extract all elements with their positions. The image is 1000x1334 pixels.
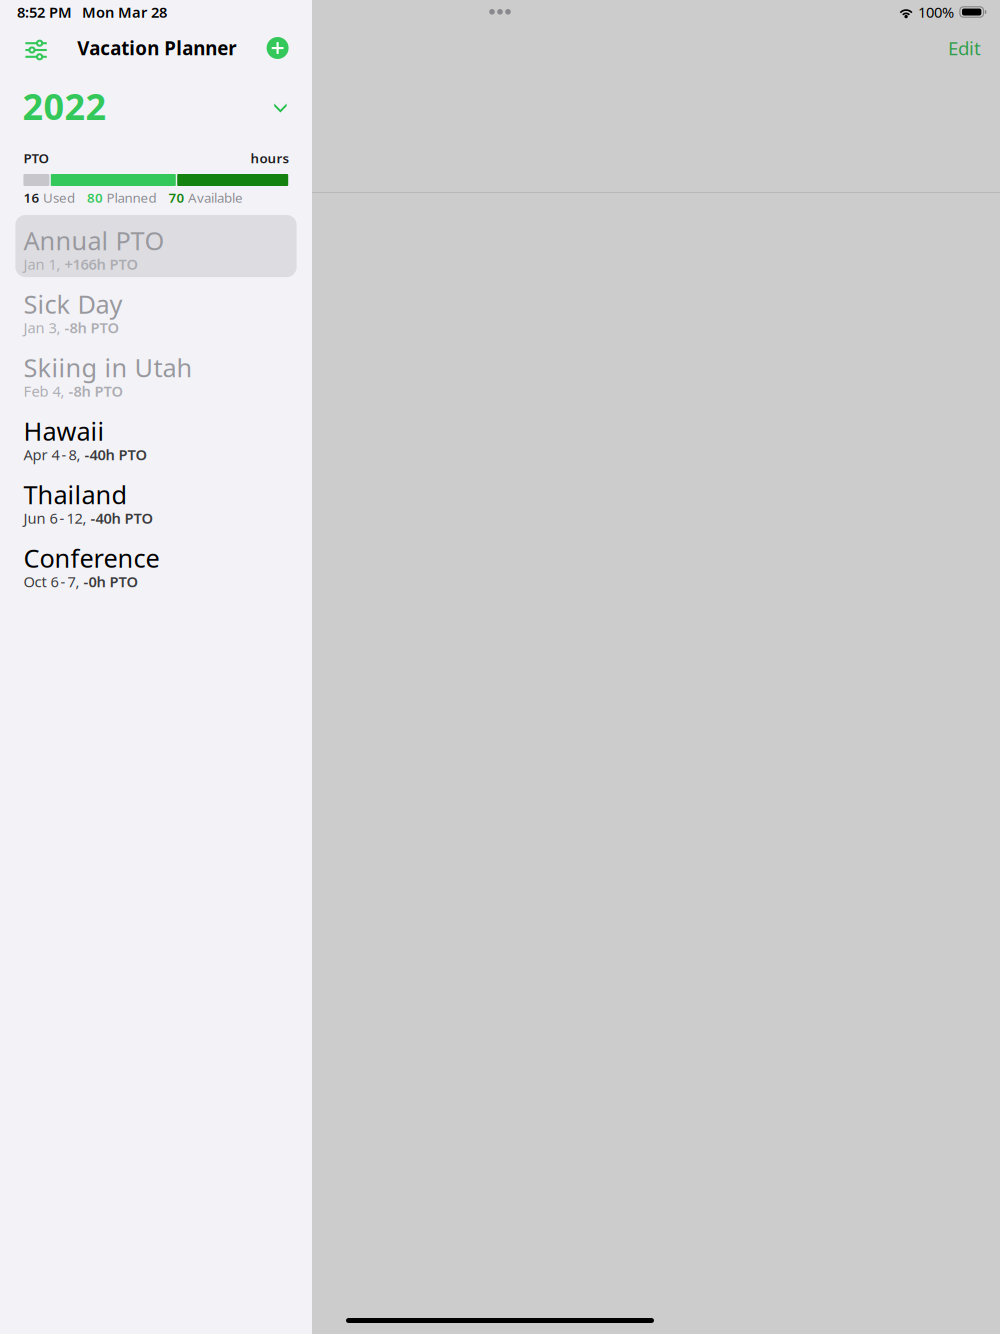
staticText: 2022 [22,82,106,130]
staticText: Jun 6 - 12, [23,508,90,528]
staticText: -40h PTO [84,445,147,464]
staticText: 100% [918,2,954,22]
staticText: Hawaii [23,414,104,448]
staticText: Available [188,189,243,206]
staticText: Jan 1, [23,254,64,274]
staticText: Sick Day [23,287,122,321]
staticText: hours [251,149,290,167]
staticText: -8h PTO [68,381,123,401]
staticText: Conference [23,541,159,575]
staticText: -8h PTO [64,318,119,337]
button[interactable]: Add event [257,27,313,69]
button[interactable]: Choose year [262,89,313,122]
staticText: Thailand [23,478,127,511]
staticText: PTO [23,149,48,167]
staticText: 8:52 PM [17,2,72,22]
staticText: 70 [168,189,184,206]
staticText: -0h PTO [83,572,138,591]
button[interactable]: Hawaii [15,406,297,468]
button[interactable]: Skiing in Utah [15,342,297,404]
button[interactable]: Annual PTO [15,215,297,277]
staticText: +166h PTO [64,254,138,274]
staticText: Skiing in Utah [23,351,192,384]
staticText: -40h PTO [90,508,153,528]
button[interactable]: Edit [928,26,1000,70]
staticText: 80 [87,189,103,206]
staticText: Mon Mar 28 [82,2,167,22]
staticText: Feb 4, [23,381,68,401]
staticText: Used [43,189,75,206]
staticText: Vacation Planner [77,36,236,60]
button[interactable]: Thailand [15,469,297,531]
staticText: Edit [948,36,981,60]
staticText: Jan 3, [23,318,64,337]
staticText: 16 [23,189,39,206]
button[interactable]: Filter options [0,28,57,68]
staticText: Apr 4 - 8, [23,445,84,464]
staticText: Oct 6 - 7, [23,572,83,591]
staticText: Annual PTO [23,224,164,257]
button[interactable]: Sick Day [15,278,297,341]
staticText: Planned [106,189,156,206]
button[interactable]: Conference [15,533,297,595]
